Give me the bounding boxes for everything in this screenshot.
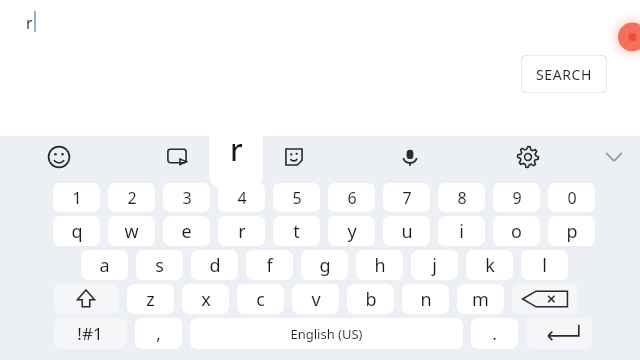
button[interactable]: 8: [438, 183, 485, 212]
staticText: f: [266, 253, 273, 278]
button[interactable]: Backspace: [512, 284, 578, 314]
button[interactable]: t: [273, 216, 320, 246]
button[interactable]: English (US): [190, 318, 463, 349]
button[interactable]: 4: [218, 183, 265, 212]
button[interactable]: o: [493, 216, 540, 246]
staticText: English (US): [290, 325, 363, 343]
staticText: 3: [182, 187, 192, 209]
button[interactable]: g: [301, 250, 348, 280]
staticText: 8: [457, 187, 467, 209]
button[interactable]: 1: [53, 183, 100, 212]
staticText: 5: [292, 187, 302, 209]
button[interactable]: i: [438, 216, 485, 246]
staticText: s: [155, 253, 164, 278]
button[interactable]: s: [136, 250, 183, 280]
button[interactable]: u: [383, 216, 430, 246]
button[interactable]: Voice input: [351, 136, 469, 177]
staticText: m: [472, 287, 489, 312]
staticText: 2: [127, 187, 137, 209]
staticText: p: [566, 219, 578, 244]
button[interactable]: 0: [548, 183, 595, 212]
button[interactable]: 2: [108, 183, 155, 212]
button[interactable]: w: [108, 216, 155, 246]
staticText: d: [209, 253, 221, 278]
staticText: y: [347, 219, 357, 244]
staticText: v: [311, 287, 321, 312]
button[interactable]: h: [356, 250, 403, 280]
button[interactable]: p: [548, 216, 595, 246]
button[interactable]: d: [191, 250, 238, 280]
button[interactable]: k: [466, 250, 513, 280]
button[interactable]: GIF: [118, 136, 236, 177]
staticText: 1: [72, 187, 82, 209]
staticText: c: [256, 287, 265, 312]
staticText: g: [319, 253, 331, 278]
button[interactable]: a: [81, 250, 128, 280]
staticText: a: [99, 253, 110, 278]
button[interactable]: f: [246, 250, 293, 280]
button[interactable]: 7: [383, 183, 430, 212]
staticText: e: [181, 219, 192, 244]
button[interactable]: SEARCH: [521, 55, 607, 93]
staticText: w: [124, 219, 139, 244]
button[interactable]: z: [127, 284, 174, 314]
button[interactable]: j: [411, 250, 458, 280]
staticText: b: [365, 287, 377, 312]
staticText: SEARCH: [536, 65, 592, 84]
button[interactable]: n: [402, 284, 449, 314]
button[interactable]: v: [292, 284, 339, 314]
staticText: h: [374, 253, 386, 278]
staticText: n: [420, 287, 432, 312]
button[interactable]: !#1: [53, 318, 127, 349]
button[interactable]: .: [471, 318, 518, 349]
staticText: o: [511, 219, 522, 244]
button[interactable]: b: [347, 284, 394, 314]
button[interactable]: 5: [273, 183, 320, 212]
staticText: r: [26, 12, 33, 34]
staticText: x: [201, 287, 211, 312]
button[interactable]: Enter: [526, 318, 592, 349]
button[interactable]: 3: [163, 183, 210, 212]
staticText: 6: [347, 187, 357, 209]
button[interactable]: Stickers: [237, 136, 351, 177]
staticText: 7: [402, 187, 412, 209]
staticText: t: [293, 219, 300, 244]
button[interactable]: r: [218, 216, 265, 246]
staticText: j: [432, 253, 437, 278]
staticText: r: [238, 219, 246, 244]
button[interactable]: Hide keyboard: [587, 136, 640, 177]
button[interactable]: 6: [328, 183, 375, 212]
button[interactable]: ,: [135, 318, 182, 349]
staticText: u: [401, 219, 413, 244]
staticText: .: [492, 322, 497, 345]
staticText: !#1: [77, 322, 103, 345]
button[interactable]: y: [328, 216, 375, 246]
button[interactable]: Keyboard settings: [469, 136, 587, 177]
staticText: 9: [512, 187, 522, 209]
staticText: ,: [156, 322, 161, 345]
staticText: q: [71, 219, 83, 244]
staticText: k: [485, 253, 495, 278]
staticText: l: [542, 253, 547, 278]
button[interactable]: x: [182, 284, 229, 314]
button[interactable]: m: [457, 284, 504, 314]
staticText: 4: [237, 187, 247, 209]
staticText: r: [230, 129, 243, 170]
staticText: 0: [567, 187, 577, 209]
button[interactable]: c: [237, 284, 284, 314]
button[interactable]: Shift: [53, 284, 119, 314]
button[interactable]: q: [53, 216, 100, 246]
button[interactable]: e: [163, 216, 210, 246]
button[interactable]: 9: [493, 183, 540, 212]
button[interactable]: Emoji: [0, 136, 118, 177]
staticText: i: [459, 219, 464, 244]
button[interactable]: l: [521, 250, 568, 280]
staticText: z: [146, 287, 155, 312]
